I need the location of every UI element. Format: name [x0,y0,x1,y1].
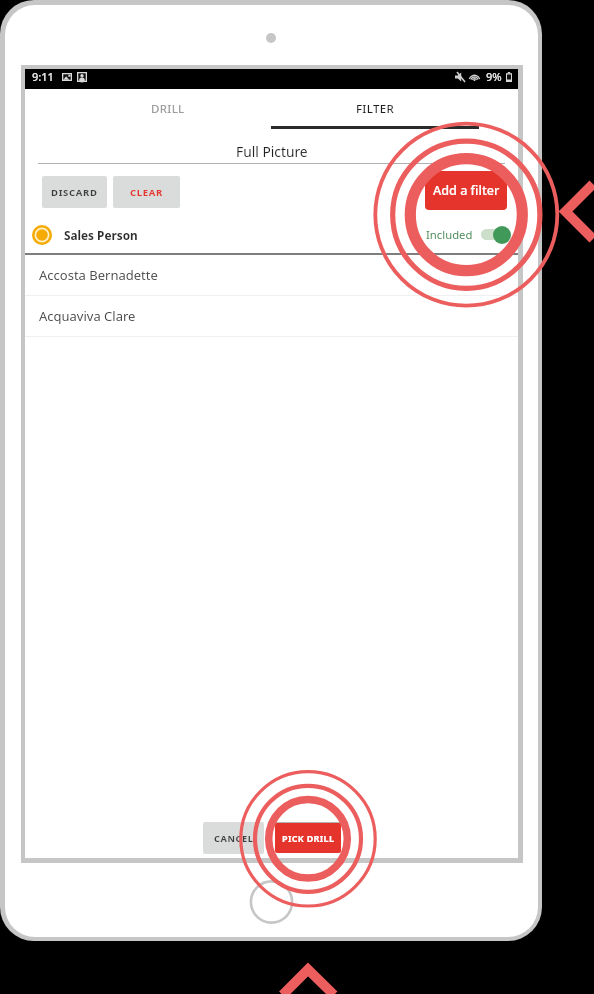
button[interactable]: Add a filter [425,171,507,210]
button[interactable]: DRILL [64,89,271,129]
staticText: DISCARD [51,186,98,199]
button[interactable]: Sales Person [25,216,518,253]
button[interactable]: PICK DRILL [275,823,341,853]
staticText: Accosta Bernadette [39,266,158,284]
staticText: PICK DRILL [282,832,335,844]
staticText: Acquaviva Clare [39,307,136,325]
button[interactable]: Included toggle [481,225,510,244]
staticText: 9:11 [32,69,54,84]
button[interactable]: CLEAR [113,176,180,208]
staticText: CANCEL [214,832,254,845]
staticText: Full Picture [236,142,308,161]
staticText: 9% [486,69,502,84]
staticText: CLEAR [130,186,164,199]
staticText: Sales Person [64,227,138,243]
button[interactable]: Accosta Bernadette [25,255,518,295]
staticText: Add a filter [433,182,500,199]
staticText: DRILL [151,101,185,117]
staticText: Included [426,227,473,242]
button[interactable]: DISCARD [42,176,107,208]
button[interactable]: FILTER [271,89,479,129]
staticText: FILTER [356,101,394,117]
button[interactable]: Acquaviva Clare [25,296,518,336]
button[interactable]: CANCEL [203,822,264,854]
